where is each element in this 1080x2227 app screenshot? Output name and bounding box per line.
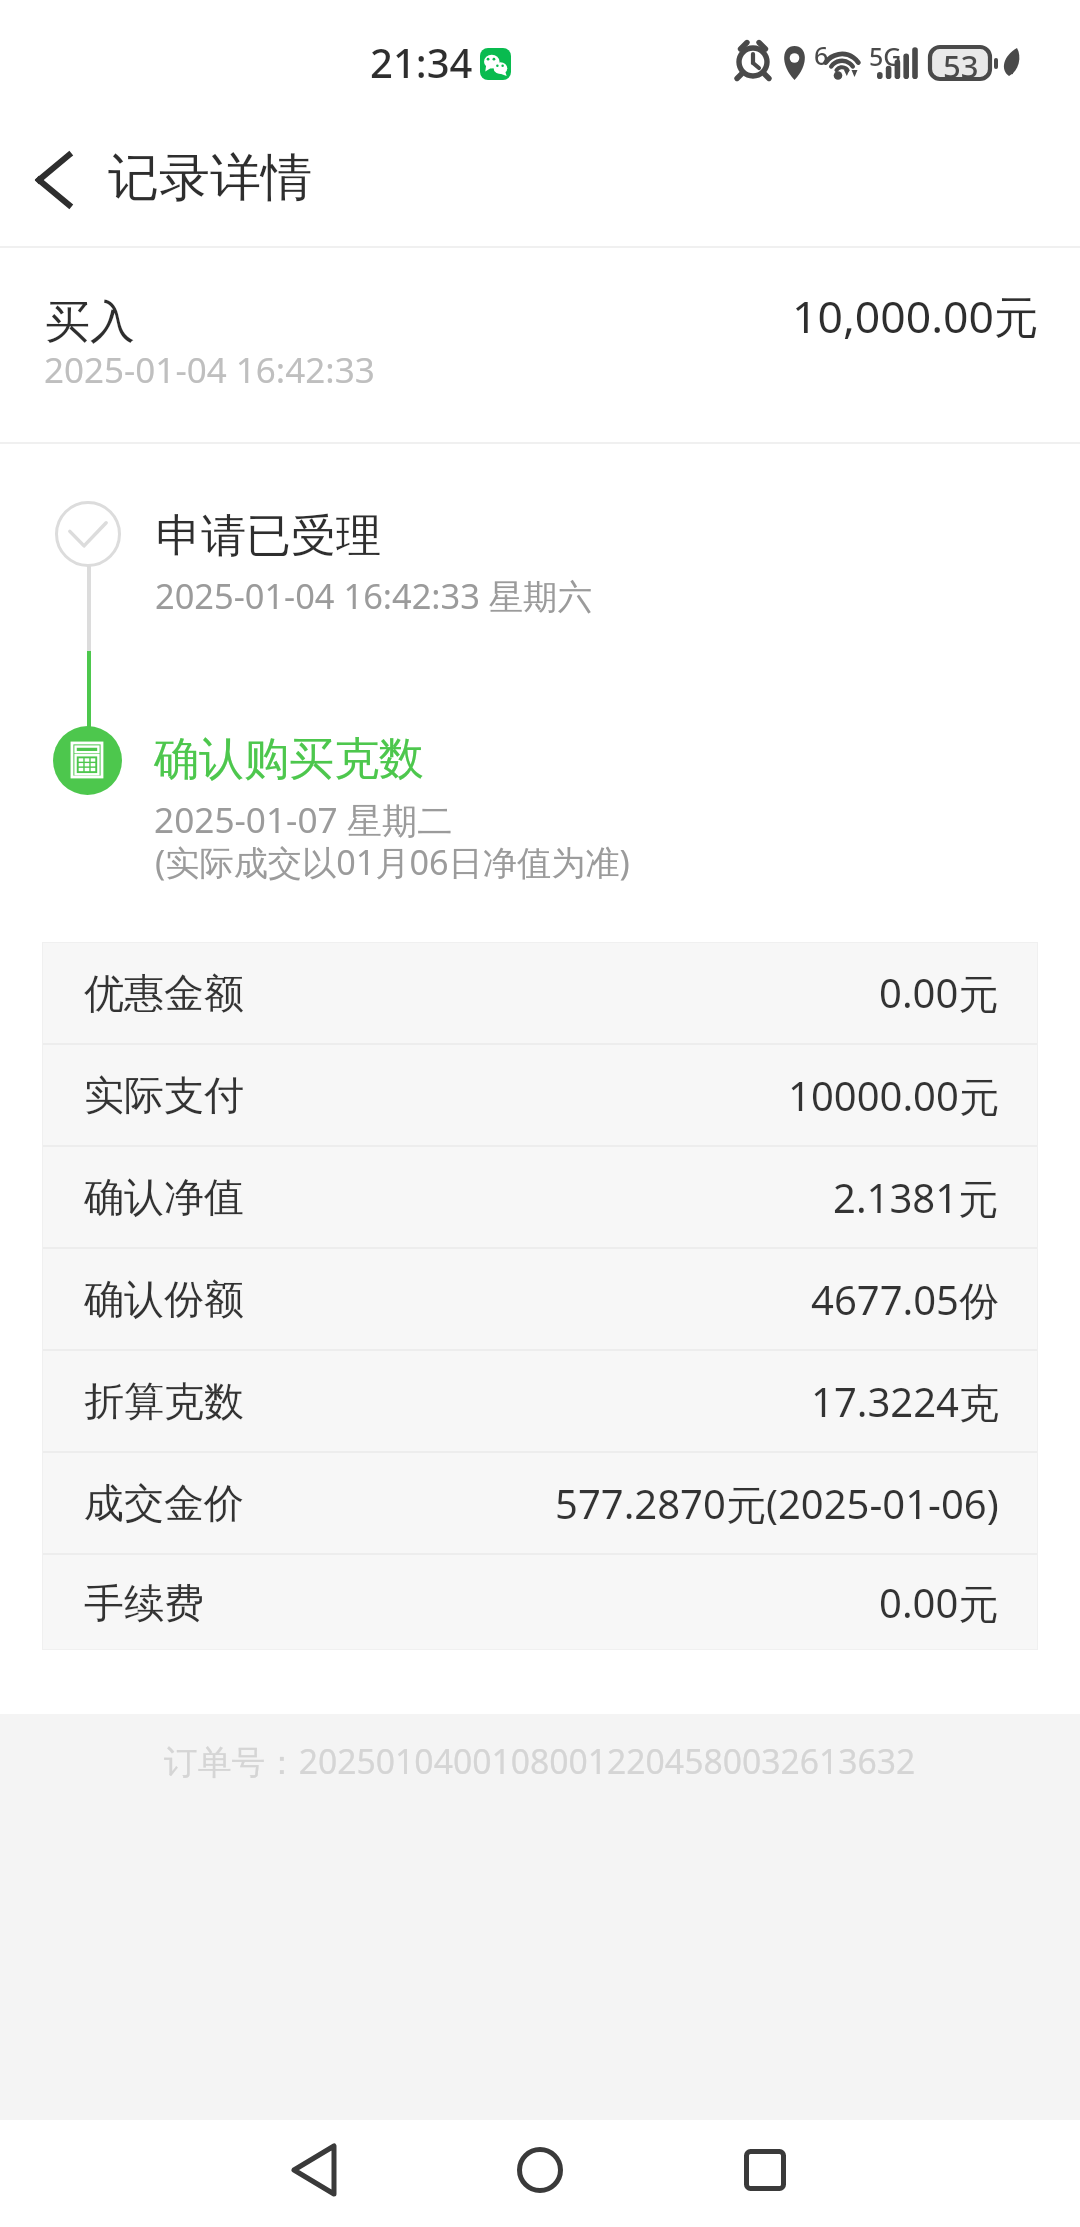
- staticText: 确认购买克数: [154, 731, 424, 788]
- staticText: 成交金价: [84, 1478, 244, 1528]
- staticText: 折算克数: [84, 1376, 244, 1426]
- button[interactable]: Back: [244, 2120, 384, 2220]
- staticText: 实际支付: [84, 1070, 244, 1120]
- button[interactable]: 折算克数: [42, 1351, 1038, 1451]
- staticText: 5G: [869, 39, 902, 73]
- button[interactable]: 实际支付: [42, 1045, 1038, 1145]
- staticText: 53: [943, 45, 979, 87]
- staticText: 优惠金额: [84, 968, 244, 1018]
- staticText: 买入: [45, 294, 135, 351]
- staticText: 2025-01-07 星期二: [154, 795, 453, 843]
- staticText: 17.3224克: [811, 1374, 999, 1429]
- staticText: 确认份额: [84, 1274, 244, 1324]
- staticText: 0.00元: [879, 1575, 999, 1630]
- staticText: 手续费: [84, 1578, 204, 1628]
- button[interactable]: 优惠金额: [42, 942, 1038, 1043]
- staticText: 2025-01-04 16:42:33 星期六: [155, 572, 593, 619]
- staticText: 0.00元: [879, 965, 999, 1020]
- staticText: 4677.05份: [811, 1272, 999, 1327]
- staticText: (实际成交以01月06日净值为准): [155, 838, 630, 885]
- staticText: 记录详情: [108, 146, 312, 210]
- staticText: 订单号：20250104001080012204580032613632: [164, 1738, 916, 1784]
- button[interactable]: 确认净值: [42, 1147, 1038, 1247]
- button[interactable]: 成交金价: [42, 1453, 1038, 1553]
- button[interactable]: 确认份额: [42, 1249, 1038, 1349]
- button[interactable]: Back: [8, 134, 100, 226]
- button[interactable]: 手续费: [42, 1555, 1038, 1650]
- button[interactable]: Recent apps: [695, 2120, 835, 2220]
- staticText: 2.1381元: [833, 1170, 999, 1225]
- staticText: 确认净值: [84, 1172, 244, 1222]
- staticText: 6: [814, 38, 829, 72]
- staticText: 申请已受理: [156, 508, 381, 565]
- staticText: 2025-01-04 16:42:33: [44, 346, 375, 394]
- staticText: 10000.00元: [788, 1068, 999, 1123]
- staticText: 577.2870元(2025-01-06): [555, 1476, 999, 1531]
- button[interactable]: Home: [470, 2120, 610, 2220]
- staticText: 10,000.00元: [792, 285, 1039, 346]
- staticText: 21:34: [370, 35, 473, 89]
